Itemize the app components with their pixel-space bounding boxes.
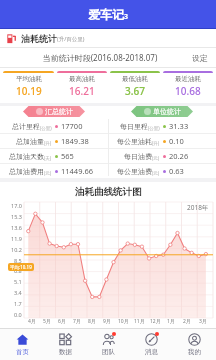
staticText: 爱车记 (88, 7, 124, 22)
button[interactable]: 数据 (44, 329, 87, 360)
staticText: 汇总统计 (45, 107, 73, 116)
staticText: 总加油量 (16, 137, 44, 146)
staticText: (升) (152, 140, 160, 146)
staticText: 565 (61, 151, 74, 161)
button[interactable]: 每日油费 (108, 149, 216, 163)
staticText: 每公里油耗 (117, 137, 152, 146)
staticText: 0.10 (169, 136, 184, 146)
staticText: 12月 (150, 318, 161, 325)
staticText: 0.0 (14, 311, 22, 318)
staticText: 数据 (59, 348, 72, 356)
button[interactable]: 最近油耗 (163, 71, 213, 100)
staticText: 1849.38 (61, 136, 89, 146)
button[interactable]: 团队 (87, 329, 130, 360)
staticText: 20.26 (169, 151, 189, 161)
button[interactable]: 总加油费用 (0, 164, 108, 178)
button[interactable]: 首页 (0, 329, 44, 360)
staticText: (升) (44, 140, 52, 146)
staticText: 团队 (102, 348, 115, 356)
staticText: 单位统计 (153, 107, 181, 116)
staticText: 每日里程 (120, 122, 148, 131)
button[interactable]: 最低油耗 (110, 71, 160, 100)
staticText: 10.2 (11, 246, 22, 253)
staticText: 13.6 (11, 224, 22, 231)
staticText: 设定 (192, 53, 208, 63)
staticText: 2月 (183, 318, 191, 325)
staticText: 10月 (118, 318, 129, 325)
staticText: 5.1 (14, 278, 22, 285)
staticText: 首页 (16, 348, 29, 356)
staticText: 1月 (167, 318, 175, 325)
staticText: 1.7 (14, 300, 22, 307)
staticText: (公里) (148, 125, 160, 131)
staticText: 平均油耗 (16, 75, 42, 83)
staticText: 11449.66 (61, 166, 94, 176)
staticText: 最低油耗 (122, 75, 148, 83)
staticText: (元) (44, 170, 52, 176)
staticText: 11.9 (11, 235, 22, 242)
staticText: 5月 (43, 318, 51, 325)
staticText: 0.63 (169, 166, 184, 176)
button[interactable]: 当前统计时段(2016.08-2018.07) (0, 48, 216, 67)
staticText: 3.67 (125, 84, 145, 98)
staticText: 7月 (73, 318, 81, 325)
staticText: 油耗统计 (21, 33, 57, 44)
button[interactable]: 我的 (173, 329, 216, 360)
staticText: 6.8 (14, 267, 22, 274)
staticText: 3.4 (14, 289, 22, 296)
staticText: 每公里油费 (117, 167, 152, 176)
staticText: 2018年 (187, 203, 209, 212)
button[interactable]: 总加油天数 (0, 149, 108, 163)
staticText: (公里) (40, 125, 52, 131)
staticText: (元) (152, 155, 160, 161)
button[interactable]: 每公里油耗 (108, 134, 216, 148)
staticText: 17.0 (11, 202, 22, 209)
button[interactable]: 总计里程 (0, 119, 108, 133)
staticText: 11月 (134, 318, 145, 325)
staticText: 总加油天数 (9, 152, 44, 161)
staticText: 3 (124, 12, 129, 22)
staticText: 总加油费用 (9, 167, 44, 176)
staticText: 16.21 (69, 84, 95, 98)
staticText: 4月 (28, 318, 36, 325)
staticText: 8.5 (14, 257, 22, 264)
button[interactable]: 平均油耗 (3, 71, 54, 100)
staticText: (升/百公里) (57, 35, 85, 43)
staticText: 最高油耗 (69, 75, 95, 83)
staticText: 油耗曲线统计图 (75, 186, 142, 198)
staticText: 6月 (58, 318, 66, 325)
staticText: 最近油耗 (175, 75, 201, 83)
button[interactable]: 消息 (130, 329, 173, 360)
staticText: (元) (152, 170, 160, 176)
staticText: 15.3 (11, 213, 22, 220)
button[interactable]: 总加油量 (0, 134, 108, 148)
button[interactable]: 每日里程 (108, 119, 216, 133)
button[interactable]: 每公里油费 (108, 164, 216, 178)
button[interactable]: 最高油耗 (57, 71, 107, 100)
staticText: 当前统计时段(2016.08-2018.07) (8, 52, 192, 63)
staticText: 17700 (61, 121, 83, 131)
staticText: 31.33 (169, 121, 189, 131)
staticText: (天) (44, 155, 52, 161)
staticText: 9月 (103, 318, 111, 325)
staticText: 我的 (188, 348, 201, 356)
staticText: 总计里程 (12, 122, 40, 131)
staticText: 平均:10.19 (10, 264, 32, 270)
staticText: 8月 (88, 318, 96, 325)
staticText: 3月 (199, 318, 207, 325)
staticText: 消息 (145, 348, 158, 356)
staticText: 每日油费 (124, 152, 152, 161)
staticText: 10.19 (16, 84, 42, 98)
staticText: 10.68 (175, 84, 201, 98)
